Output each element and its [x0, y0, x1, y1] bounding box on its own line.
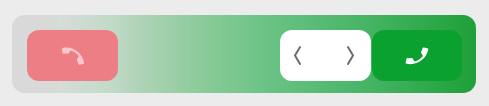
button[interactable]: Previous — [280, 30, 324, 81]
button[interactable]: Decline call — [27, 30, 118, 81]
button[interactable]: Answer call — [372, 30, 462, 81]
button[interactable]: Next — [324, 30, 371, 81]
